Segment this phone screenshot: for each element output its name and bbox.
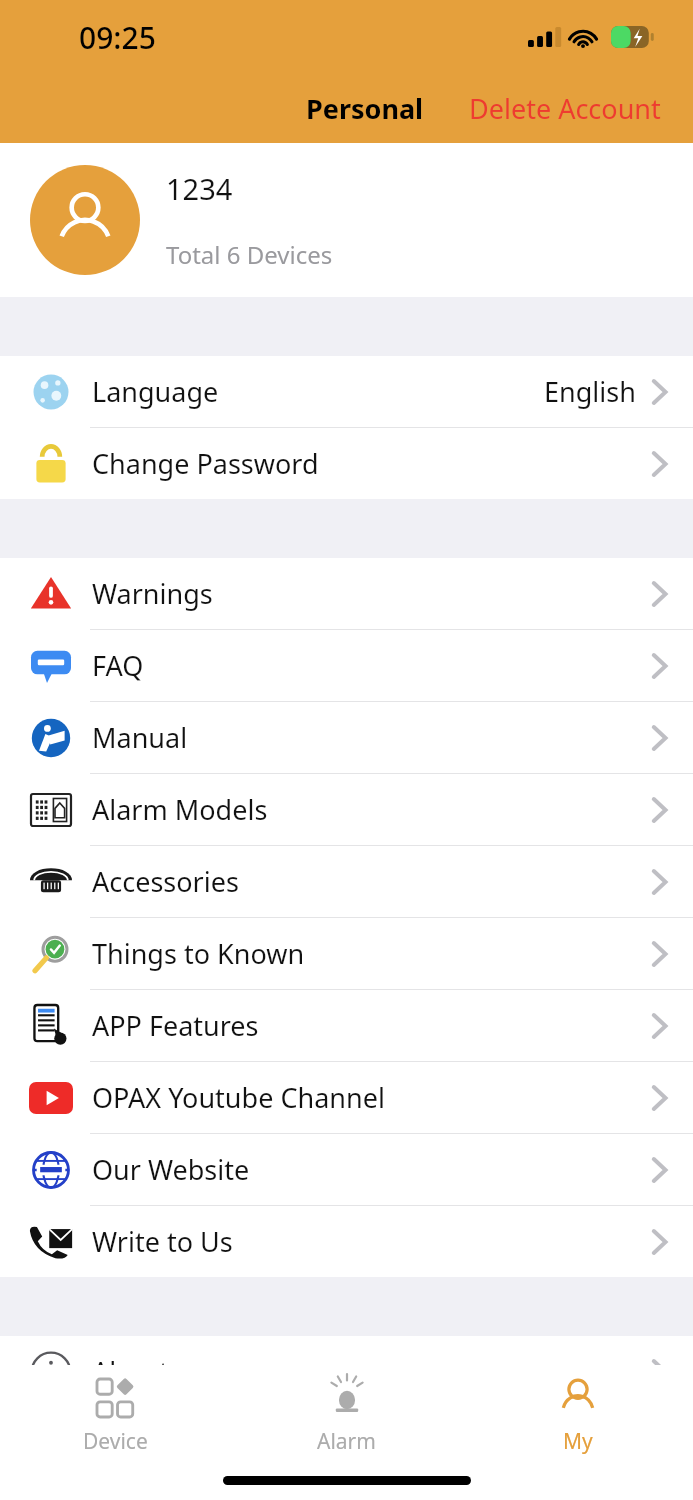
staticText: English <box>544 373 636 410</box>
other: Alarm <box>327 1378 367 1418</box>
staticText: Total 6 Devices <box>166 238 333 271</box>
staticText: About <box>92 1353 169 1390</box>
button[interactable]: Change Password <box>0 428 693 499</box>
button[interactable]: APP Features <box>0 990 693 1061</box>
staticText: Device <box>83 1427 148 1456</box>
button[interactable]: Manual <box>0 702 693 773</box>
button[interactable]: Accessories <box>0 846 693 917</box>
staticText: Accessories <box>92 863 239 900</box>
staticText: Things to Known <box>92 935 305 972</box>
button[interactable]: Write to Us <box>0 1206 693 1277</box>
staticText: Language <box>92 373 219 410</box>
button[interactable]: FAQ <box>0 630 693 701</box>
staticText: FAQ <box>92 647 144 684</box>
staticText: 09:25 <box>79 17 156 58</box>
button[interactable]: My <box>462 1365 693 1460</box>
staticText: 1234 <box>166 169 233 208</box>
other: Device <box>97 1379 135 1417</box>
button[interactable]: Language <box>0 356 693 427</box>
button[interactable]: Delete Account <box>469 90 661 127</box>
other: My <box>559 1379 597 1417</box>
button[interactable]: OPAX Youtube Channel <box>0 1062 693 1133</box>
button[interactable]: Warnings <box>0 558 693 629</box>
staticText: Personal <box>306 90 424 127</box>
staticText: Write to Us <box>92 1223 233 1260</box>
button[interactable]: Things to Known <box>0 918 693 989</box>
staticText: Alarm <box>317 1427 376 1456</box>
button[interactable]: Alarm Models <box>0 774 693 845</box>
staticText: Warnings <box>92 575 213 612</box>
staticText: Alarm Models <box>92 791 268 828</box>
staticText: Manual <box>92 719 188 756</box>
button[interactable]: About <box>0 1336 693 1407</box>
button[interactable]: Alarm <box>231 1365 462 1460</box>
staticText: My <box>563 1427 593 1456</box>
staticText: Delete Account <box>469 90 661 127</box>
staticText: OPAX Youtube Channel <box>92 1079 385 1116</box>
staticText: Our Website <box>92 1151 250 1188</box>
staticText: Change Password <box>92 445 319 482</box>
button[interactable]: Device <box>0 1365 231 1460</box>
button[interactable]: Our Website <box>0 1134 693 1205</box>
staticText: APP Features <box>92 1007 259 1044</box>
button[interactable]: 1234 <box>0 143 693 297</box>
